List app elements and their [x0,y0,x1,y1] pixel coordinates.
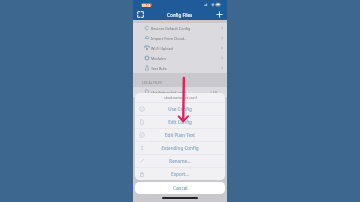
button[interactable]: Test Rule [133,63,227,73]
button[interactable]: Edit Config [135,115,225,128]
staticText: 1 KB [210,90,218,95]
staticText: Rename... [169,158,191,164]
button[interactable]: Use Config [135,102,225,115]
staticText: Config Files [167,12,193,18]
button[interactable]: Add config [215,10,224,19]
button[interactable]: Wi-Fi Upload [133,43,227,53]
button[interactable]: Import From Cloud... [133,33,227,43]
staticText: Wi-Fi Upload [151,46,217,51]
staticText: Export... [171,171,189,177]
staticText: Modules [151,56,217,61]
staticText: shadowrocket.conf [151,90,210,95]
staticText: Restore Default Config [151,26,217,31]
button[interactable]: Rename... [135,154,225,167]
button[interactable]: Extending Config [135,141,225,154]
button[interactable]: Cancel [135,182,225,194]
staticText: Use Config [168,106,192,112]
button[interactable]: Restore Default Config [133,23,227,33]
button[interactable]: Modules [133,53,227,63]
button[interactable]: Export... [135,167,225,180]
staticText: shadowrocket.conf [164,95,197,100]
staticText: LOCAL FILES [142,80,162,85]
staticText: Cancel [173,185,188,191]
staticText: Test Rule [151,66,217,71]
staticText: 09:14 [142,3,151,7]
button[interactable]: shadowrocket.conf [133,87,227,97]
button[interactable]: Edit Plain Text [135,128,225,141]
staticText: Edit Plain Text [165,132,195,138]
staticText: Edit Config [168,119,192,125]
button[interactable]: Scan QR code [136,10,145,19]
staticText: Extending Config [161,145,199,151]
staticText: Import From Cloud... [151,36,217,41]
